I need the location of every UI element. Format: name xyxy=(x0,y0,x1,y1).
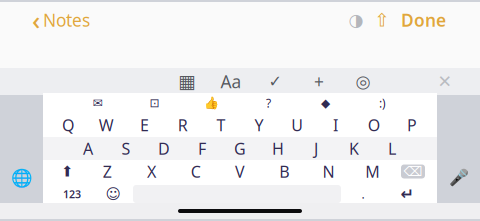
staticText: Aa xyxy=(220,70,241,93)
button[interactable]: Q xyxy=(49,114,87,136)
staticText: ◎ xyxy=(355,72,370,91)
staticText: C xyxy=(191,161,201,182)
button[interactable]: Delete xyxy=(395,160,431,182)
staticText: F xyxy=(198,138,206,159)
button[interactable]: Suggestion xyxy=(354,94,411,112)
button[interactable]: I xyxy=(316,114,355,136)
button[interactable]: U xyxy=(278,114,316,136)
button[interactable]: Text format xyxy=(220,69,242,93)
button[interactable]: N xyxy=(306,160,351,182)
staticText: ✓ xyxy=(268,72,281,91)
button[interactable]: . xyxy=(341,184,385,204)
staticText: ‹ xyxy=(32,3,40,37)
button[interactable]: X xyxy=(129,160,174,182)
staticText: B xyxy=(279,161,289,182)
button[interactable]: W xyxy=(87,114,125,136)
staticText: Z xyxy=(103,161,112,182)
button[interactable]: Z xyxy=(85,160,129,182)
staticText: W xyxy=(99,114,114,136)
staticText: Done xyxy=(401,8,446,31)
staticText: Notes xyxy=(43,8,90,31)
staticText: ◑ xyxy=(348,10,363,30)
staticText: O xyxy=(368,114,380,136)
button[interactable]: Markup xyxy=(352,69,374,93)
button[interactable]: M xyxy=(351,160,395,182)
staticText: S xyxy=(121,138,130,159)
button[interactable]: E xyxy=(125,114,164,136)
staticText: . xyxy=(361,186,364,202)
staticText: G xyxy=(234,138,246,159)
button[interactable]: Shift xyxy=(49,160,85,182)
staticText: 🌐 xyxy=(10,168,32,188)
button[interactable]: S xyxy=(107,137,145,159)
button[interactable]: H xyxy=(259,137,297,159)
staticText: V xyxy=(235,161,245,182)
staticText: N xyxy=(323,161,335,182)
staticText: ◆ xyxy=(321,96,330,110)
staticText: D xyxy=(158,138,170,159)
staticText: A xyxy=(83,138,93,159)
button[interactable]: R xyxy=(164,114,202,136)
staticText: ⬆ xyxy=(61,163,73,180)
staticText: 123 xyxy=(63,187,81,201)
staticText: R xyxy=(178,114,188,136)
button[interactable]: A xyxy=(69,137,107,159)
button[interactable]: Suggestion xyxy=(69,94,126,112)
button[interactable]: L xyxy=(373,137,411,159)
button[interactable]: O xyxy=(355,114,393,136)
button[interactable]: Collaborate xyxy=(343,9,369,31)
button[interactable]: Suggestion xyxy=(297,94,354,112)
button[interactable]: Suggestion xyxy=(240,94,297,112)
staticText: ▦ xyxy=(178,71,196,92)
staticText: M xyxy=(365,161,380,182)
staticText: ? xyxy=(266,95,271,111)
button[interactable]: Suggestion xyxy=(126,94,183,112)
button[interactable]: Done xyxy=(395,4,452,35)
staticText: X xyxy=(147,161,156,182)
button[interactable]: J xyxy=(297,137,335,159)
button[interactable]: Table xyxy=(176,69,198,93)
staticText: T xyxy=(216,114,225,136)
staticText: :) xyxy=(379,95,386,111)
staticText: + xyxy=(314,70,324,93)
button[interactable]: Checklist xyxy=(264,69,286,93)
button[interactable]: P xyxy=(393,114,431,136)
button[interactable]: T xyxy=(202,114,240,136)
button[interactable]: V xyxy=(218,160,262,182)
button[interactable]: Attach xyxy=(308,69,330,93)
staticText: K xyxy=(349,138,359,159)
staticText: I xyxy=(333,114,338,136)
button[interactable]: Suggestion xyxy=(183,94,240,112)
button[interactable]: G xyxy=(221,137,259,159)
button[interactable]: Dictate xyxy=(443,165,473,191)
staticText: ⊡ xyxy=(149,96,159,110)
button[interactable]: Share xyxy=(369,9,395,31)
staticText: 👍 xyxy=(204,96,219,110)
button[interactable]: B xyxy=(262,160,306,182)
button[interactable]: Next keyboard xyxy=(6,165,36,191)
button[interactable]: C xyxy=(174,160,218,182)
staticText: H xyxy=(272,138,284,159)
button[interactable]: Y xyxy=(240,114,278,136)
button[interactable]: Return xyxy=(385,184,429,204)
staticText: Q xyxy=(62,114,74,136)
staticText: ↵ xyxy=(400,185,413,203)
button[interactable]: 123 xyxy=(51,184,93,204)
staticText: ✕ xyxy=(437,72,452,91)
button[interactable]: Close xyxy=(432,69,458,93)
button[interactable]: D xyxy=(145,137,183,159)
button[interactable]: F xyxy=(183,137,221,159)
button[interactable]: ‹ xyxy=(28,0,94,41)
staticText: 🎤 xyxy=(448,169,468,187)
staticText: ☺ xyxy=(105,186,120,202)
staticText: E xyxy=(140,114,149,136)
staticText: L xyxy=(388,138,396,159)
button[interactable]: Emoji xyxy=(93,184,133,204)
staticText: ⌫ xyxy=(403,164,422,179)
staticText: ✉ xyxy=(92,96,102,110)
staticText: J xyxy=(314,138,318,159)
staticText: Y xyxy=(255,114,264,136)
button[interactable]: K xyxy=(335,137,373,159)
staticText: P xyxy=(407,114,417,136)
